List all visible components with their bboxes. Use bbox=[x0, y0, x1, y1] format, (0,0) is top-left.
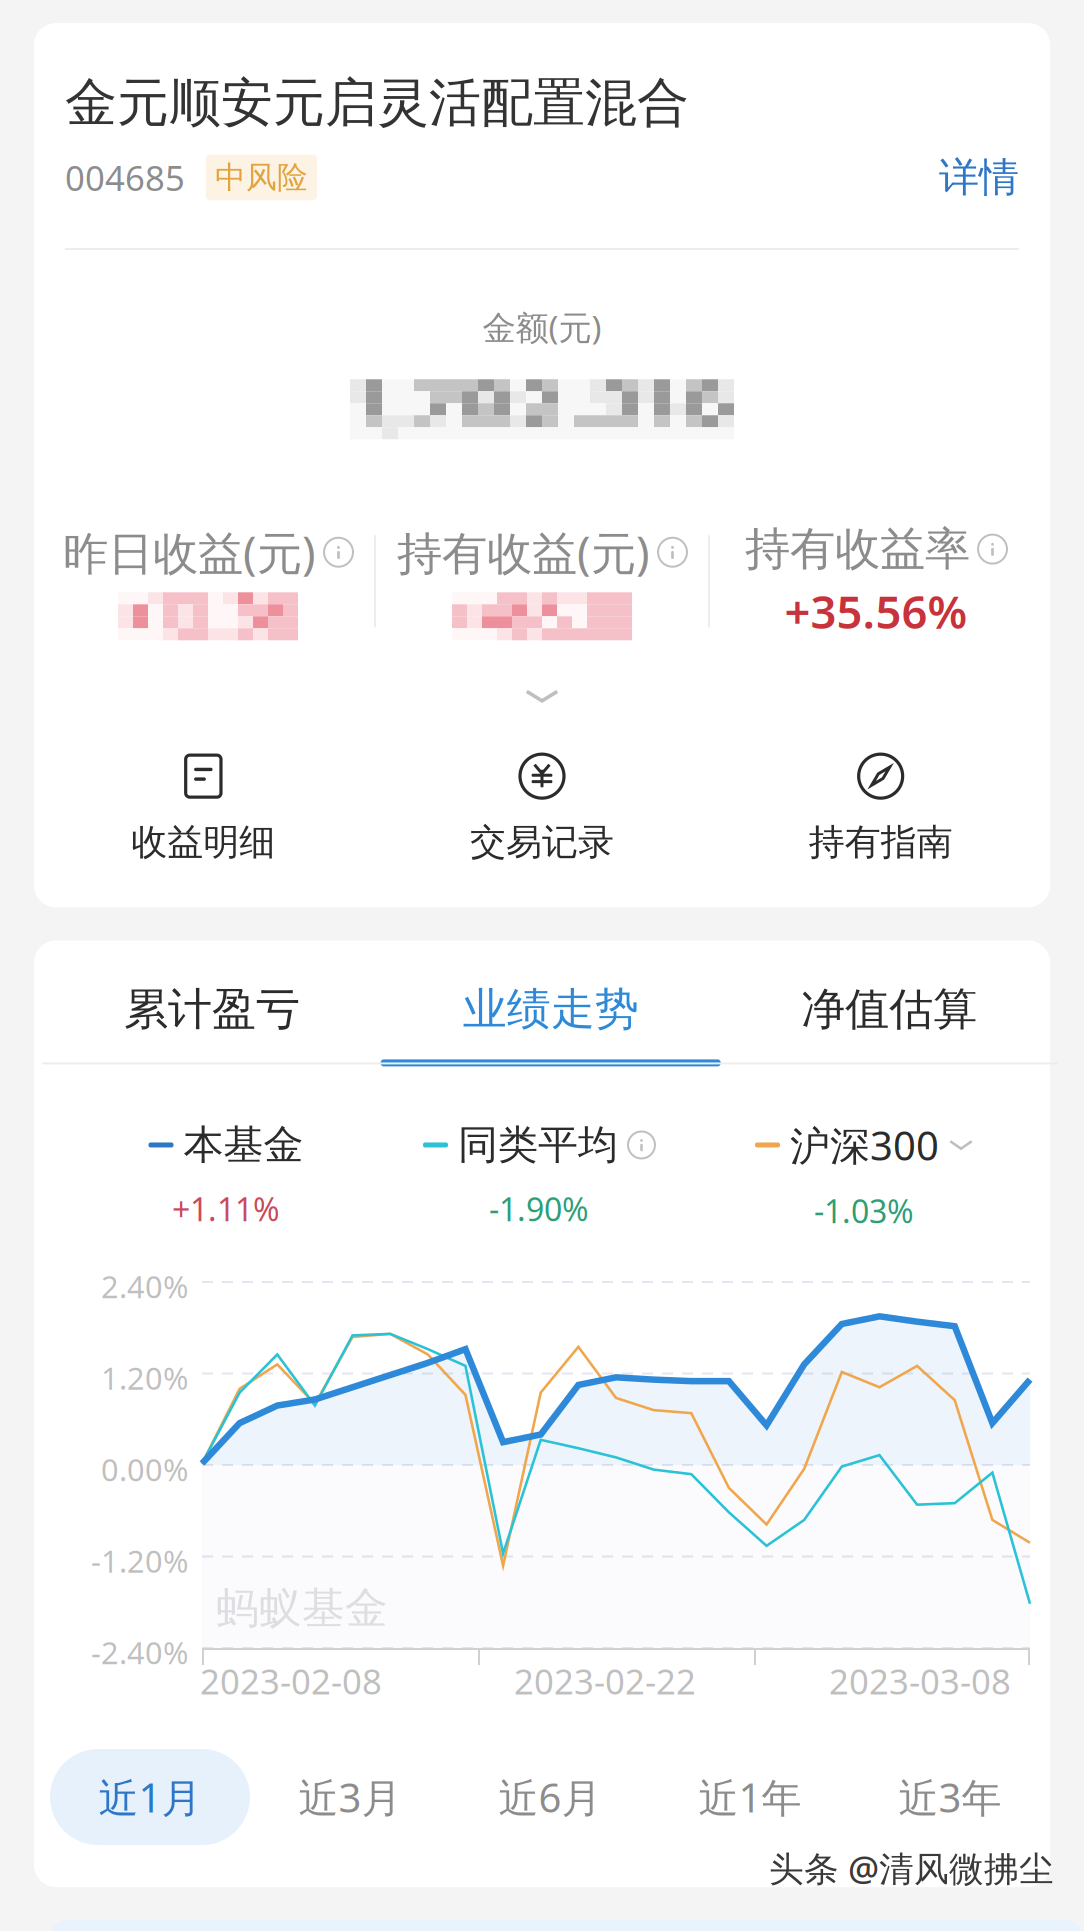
staticText: +1.11% bbox=[172, 1187, 280, 1230]
staticText: 累计盈亏 bbox=[124, 982, 300, 1036]
button[interactable]: 业绩走势 bbox=[381, 982, 719, 1066]
staticText: 2023-02-22 bbox=[514, 1658, 696, 1704]
staticText: 近1年 bbox=[698, 1770, 801, 1824]
staticText: 近3年 bbox=[898, 1770, 1001, 1824]
button[interactable]: 近3年 bbox=[850, 1749, 1050, 1845]
staticText: 持有收益率 bbox=[745, 521, 970, 577]
staticText: -1.20% bbox=[91, 1540, 188, 1581]
button[interactable]: 收益明细 bbox=[34, 754, 373, 864]
staticText: 业绩走势 bbox=[463, 982, 639, 1036]
staticText: 持有收益(元) bbox=[397, 522, 650, 582]
staticText: 1.20% bbox=[101, 1357, 188, 1398]
button[interactable]: 近1月 bbox=[50, 1749, 250, 1845]
button[interactable]: 累计盈亏 bbox=[42, 982, 381, 1066]
staticText: 昨日收益(元) bbox=[63, 522, 316, 582]
staticText: 2023-02-08 bbox=[200, 1658, 382, 1704]
button[interactable]: 沪深300 bbox=[704, 1118, 1024, 1232]
staticText: 本基金 bbox=[183, 1120, 303, 1169]
staticText: 2023-03-08 bbox=[829, 1658, 1011, 1704]
staticText: 收益明细 bbox=[131, 820, 275, 864]
button[interactable]: 近1年 bbox=[650, 1749, 850, 1845]
staticText: 交易记录 bbox=[470, 820, 614, 864]
staticText: 金元顺安元启灵活配置混合 bbox=[65, 71, 689, 135]
staticText: -2.40% bbox=[91, 1632, 188, 1673]
button[interactable]: 近3月 bbox=[250, 1749, 450, 1845]
button[interactable]: 持有指南 bbox=[711, 754, 1050, 864]
staticText: 详情 bbox=[939, 153, 1019, 202]
staticText: 头条 @清风微拂尘 bbox=[769, 1845, 1054, 1891]
staticText: 持有指南 bbox=[809, 820, 953, 864]
staticText: 金额(元) bbox=[482, 305, 601, 349]
staticText: 0.00% bbox=[101, 1449, 188, 1490]
staticText: -1.90% bbox=[489, 1187, 589, 1230]
staticText: +35.56% bbox=[784, 581, 967, 641]
button[interactable]: 近6月 bbox=[450, 1749, 650, 1845]
staticText: -1.03% bbox=[814, 1189, 914, 1232]
staticText: 沪深300 bbox=[790, 1118, 939, 1171]
staticText: 中风险 bbox=[215, 159, 308, 196]
staticText: 004685 bbox=[65, 154, 185, 200]
staticText: 同类平均 bbox=[458, 1120, 618, 1169]
button[interactable]: 展开更多 bbox=[482, 683, 602, 709]
staticText: 近1月 bbox=[98, 1770, 201, 1824]
staticText: 近3月 bbox=[298, 1770, 401, 1824]
button[interactable]: 详情 bbox=[939, 153, 1019, 202]
button[interactable]: 交易记录 bbox=[373, 754, 711, 864]
staticText: 蚂蚁基金 bbox=[216, 1582, 388, 1634]
staticText: 近6月 bbox=[498, 1770, 601, 1824]
staticText: 2.40% bbox=[101, 1266, 188, 1307]
staticText: 净值估算 bbox=[801, 982, 977, 1036]
button[interactable]: 净值估算 bbox=[719, 982, 1058, 1066]
